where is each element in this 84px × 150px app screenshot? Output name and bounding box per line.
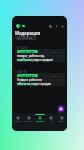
staticText: Ещё — [59, 120, 64, 123]
staticText: Согласовано — [19, 74, 36, 77]
staticText: Объекты — [24, 120, 33, 123]
button[interactable]: Ещё — [56, 113, 67, 131]
button[interactable]: Search — [47, 23, 53, 29]
staticText: Главная — [13, 120, 22, 123]
staticText: 05.03 — [52, 74, 59, 77]
staticText: СЕГОДНЯ — [15, 46, 29, 50]
button[interactable]: Объекты — [23, 113, 34, 131]
staticText: 5 МАРТА — [15, 70, 28, 74]
button[interactable]: Главная — [12, 113, 23, 131]
button[interactable]: Profile — [16, 24, 20, 28]
button[interactable]: Согласовано — [15, 73, 65, 86]
staticText: Согласовано — [19, 50, 36, 53]
button[interactable]: Filter — [53, 23, 59, 29]
staticText: Документы — [20, 58, 35, 62]
staticText: Задачи — [36, 120, 44, 123]
staticText: 05.03 — [52, 50, 59, 53]
staticText: товары; работа над ошибками; отдел прода… — [17, 54, 53, 62]
staticText: Модерация — [15, 30, 40, 36]
staticText: Найдем рейтинги объектов; отдел продаж — [17, 78, 53, 86]
staticText: Все объекты — [17, 36, 33, 40]
staticText: Документы — [20, 82, 35, 86]
button[interactable]: Чат — [45, 113, 56, 131]
staticText: Чат — [49, 120, 53, 123]
button[interactable]: Задачи — [34, 113, 45, 131]
button[interactable]: Create — [55, 103, 67, 115]
button[interactable]: Все объекты — [15, 36, 37, 40]
button[interactable]: Согласовано — [15, 49, 65, 62]
button[interactable]: More options — [59, 23, 65, 29]
